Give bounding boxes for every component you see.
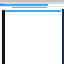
button[interactable]	[0, 4, 64, 6]
button[interactable]: Menu	[2, 10, 5, 64]
button[interactable]: Top app bar	[0, 2, 64, 4]
button[interactable]	[0, 6, 64, 9]
